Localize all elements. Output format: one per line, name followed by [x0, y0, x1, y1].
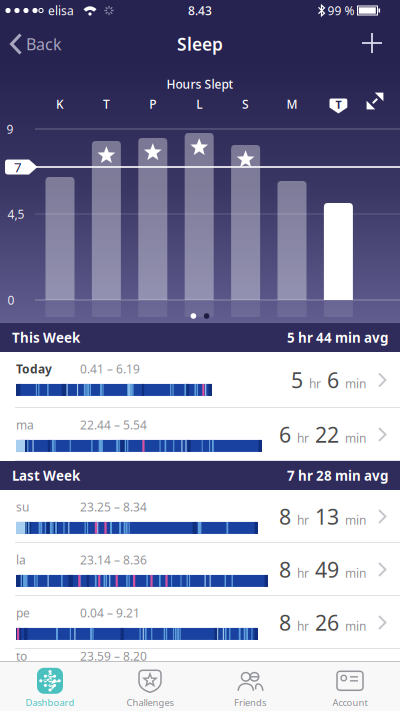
- staticText: 8: [279, 502, 291, 531]
- staticText: K: [56, 96, 64, 112]
- button[interactable]: Back: [0, 20, 78, 64]
- button[interactable]: la: [0, 543, 400, 596]
- staticText: 22: [315, 420, 339, 449]
- staticText: hr: [309, 376, 321, 392]
- staticText: M: [286, 96, 297, 112]
- staticText: Account: [332, 696, 367, 709]
- staticText: 7: [14, 158, 22, 176]
- staticText: hr: [297, 618, 309, 634]
- staticText: 8: [279, 608, 291, 637]
- button[interactable]: Dashboard: [0, 665, 100, 711]
- staticText: 8.43: [188, 2, 212, 18]
- staticText: Friends: [234, 696, 266, 709]
- staticText: 0: [7, 292, 14, 308]
- staticText: T: [103, 96, 110, 112]
- staticText: 99 %: [327, 2, 354, 18]
- button[interactable]: Friends: [200, 665, 300, 711]
- staticText: min: [345, 565, 366, 581]
- staticText: Challenges: [126, 696, 173, 709]
- staticText: 8: [279, 555, 291, 584]
- staticText: 23.59 – 8.20: [80, 648, 147, 664]
- staticText: pe: [16, 605, 30, 621]
- staticText: P: [149, 96, 156, 112]
- button[interactable]: to: [0, 646, 400, 664]
- staticText: Hours Slept: [166, 76, 233, 92]
- staticText: min: [345, 618, 366, 634]
- staticText: 5: [291, 366, 303, 394]
- staticText: min: [345, 376, 366, 392]
- staticText: 6: [279, 420, 291, 449]
- staticText: S: [242, 96, 249, 112]
- staticText: Back: [26, 33, 62, 55]
- staticText: 23.14 – 8.36: [80, 552, 147, 568]
- staticText: Today: [16, 361, 52, 377]
- staticText: 0.41 – 6.19: [80, 361, 140, 377]
- staticText: Dashboard: [25, 696, 74, 709]
- staticText: 13: [315, 502, 339, 531]
- staticText: 23.25 – 8.34: [80, 499, 147, 515]
- staticText: to: [16, 648, 27, 664]
- staticText: min: [345, 512, 366, 528]
- button[interactable]: [357, 83, 393, 119]
- staticText: T: [335, 97, 341, 112]
- staticText: This Week: [12, 329, 80, 346]
- staticText: 22.44 – 5.54: [80, 417, 147, 433]
- staticText: elisa: [48, 2, 74, 18]
- staticText: Sleep: [177, 32, 223, 55]
- staticText: su: [16, 499, 29, 515]
- staticText: Last Week: [12, 467, 80, 484]
- staticText: 4,5: [7, 206, 24, 222]
- staticText: la: [16, 552, 26, 568]
- staticText: 7 hr 28 min avg: [287, 467, 388, 484]
- staticText: ma: [16, 417, 34, 433]
- button[interactable]: Account: [300, 665, 400, 711]
- button[interactable]: ma: [0, 408, 400, 461]
- button[interactable]: [350, 21, 394, 65]
- staticText: min: [345, 430, 366, 446]
- staticText: L: [196, 96, 202, 112]
- button[interactable]: Today: [0, 352, 400, 408]
- staticText: hr: [297, 512, 309, 528]
- staticText: 5 hr 44 min avg: [287, 329, 388, 346]
- staticText: hr: [297, 565, 309, 581]
- staticText: 0.04 – 9.21: [80, 605, 140, 621]
- staticText: 6: [327, 366, 339, 394]
- staticText: 49: [315, 555, 339, 584]
- button[interactable]: Challenges: [100, 665, 200, 711]
- button[interactable]: su: [0, 490, 400, 543]
- staticText: 26: [315, 608, 339, 637]
- button[interactable]: pe: [0, 596, 400, 649]
- staticText: 9: [6, 121, 13, 137]
- staticText: hr: [297, 430, 309, 446]
